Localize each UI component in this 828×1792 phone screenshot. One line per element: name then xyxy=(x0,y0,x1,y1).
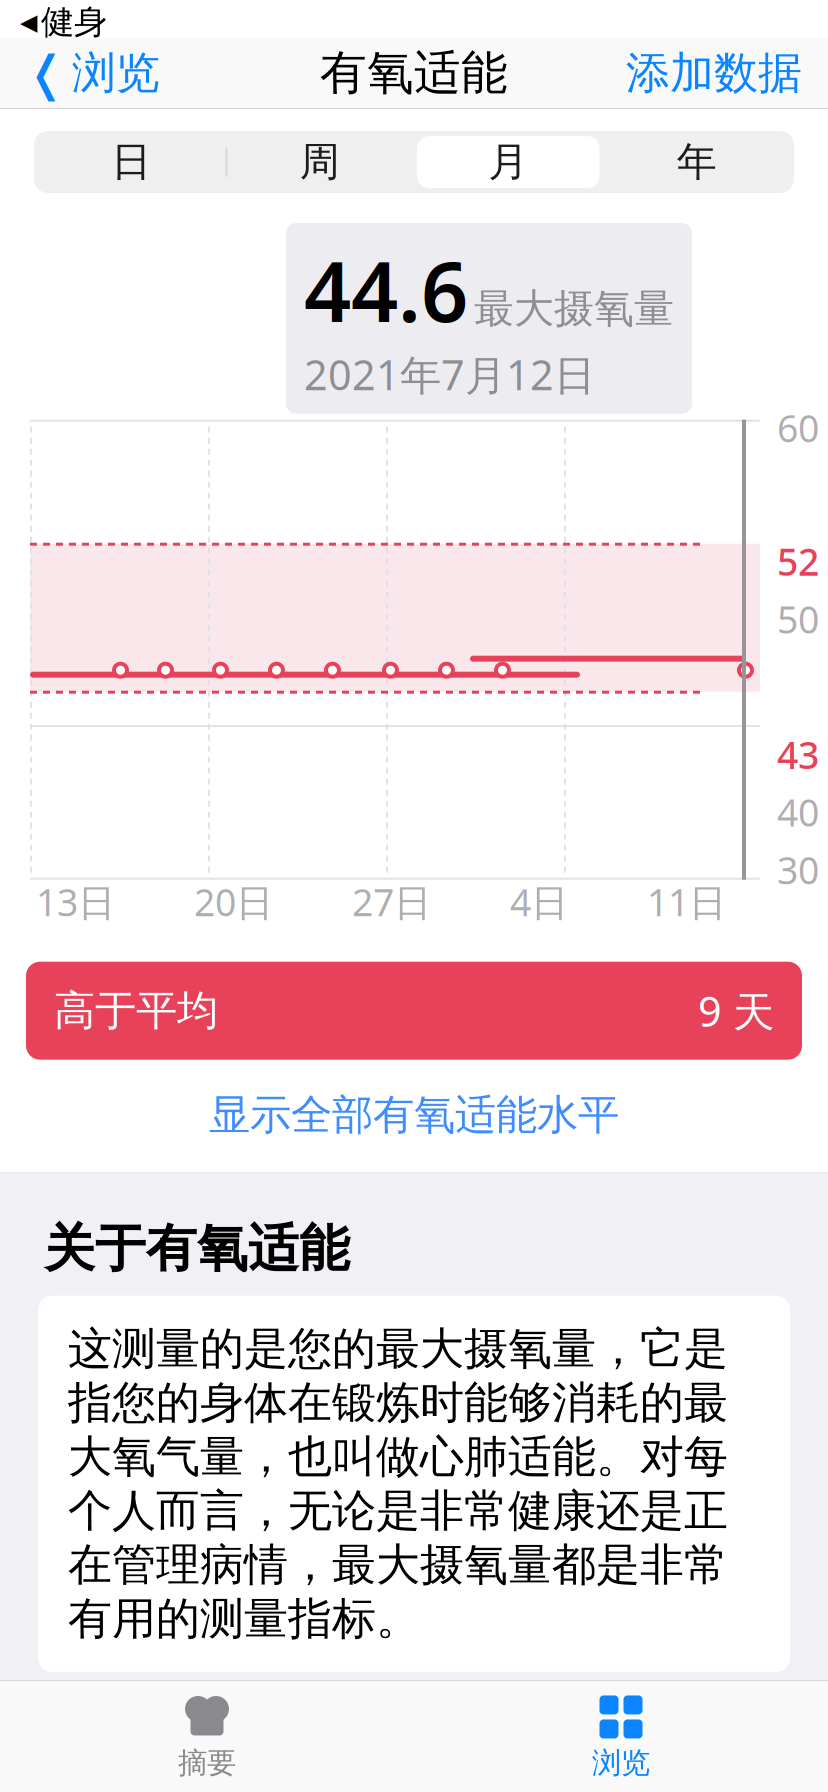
staticText: 显示全部有氧适能水平 xyxy=(209,1090,619,1140)
staticText: 2021年7月12日 xyxy=(304,347,595,402)
staticText: 13日 xyxy=(36,877,115,926)
staticText: 摘要 xyxy=(178,1745,236,1781)
button[interactable]: 年 xyxy=(602,133,791,191)
staticText: 周 xyxy=(300,137,340,187)
staticText: 这测量的是您的最大摄氧量，它是指您的身体在锻炼时能够消耗的最大氧气量，也叫做心肺… xyxy=(68,1322,728,1646)
staticText: 27日 xyxy=(352,877,431,926)
button[interactable]: 摘要 xyxy=(0,1681,414,1791)
staticText: ◀ xyxy=(20,9,37,35)
staticText: 最大摄氧量 xyxy=(474,284,674,333)
staticText: 43 xyxy=(777,730,819,779)
staticText: 4日 xyxy=(510,877,568,926)
staticText: 日 xyxy=(111,137,151,187)
staticText: 关于有氧适能 xyxy=(44,1217,350,1280)
staticText: 月 xyxy=(488,137,528,187)
button[interactable]: 高于平均 xyxy=(0,962,828,1060)
staticText: 9 天 xyxy=(698,983,774,1038)
staticText: 52 xyxy=(777,536,819,586)
staticText: 浏览 xyxy=(72,46,160,100)
button[interactable]: 显示全部有氧适能水平 xyxy=(189,1076,639,1154)
button[interactable]: 浏览 xyxy=(414,1681,828,1791)
staticText: 11日 xyxy=(647,877,726,926)
staticText: 有氧适能 xyxy=(320,44,508,102)
staticText: 44.6 xyxy=(304,235,468,345)
button[interactable]: 周 xyxy=(225,133,414,191)
staticText: 30 xyxy=(777,845,819,894)
staticText: 添加数据 xyxy=(626,46,802,100)
staticText: 20日 xyxy=(194,877,273,926)
staticText: ❬ xyxy=(26,46,66,100)
staticText: 50 xyxy=(777,594,819,644)
staticText: 健身 xyxy=(41,2,107,42)
button[interactable]: ❬ xyxy=(12,38,174,108)
button[interactable]: 月 xyxy=(414,133,602,191)
staticText: 高于平均 xyxy=(54,985,218,1036)
staticText: 年 xyxy=(677,137,717,187)
staticText: 浏览 xyxy=(592,1745,650,1781)
staticText: 40 xyxy=(777,787,819,837)
button[interactable]: 日 xyxy=(37,133,225,191)
staticText: 60 xyxy=(777,403,819,453)
button[interactable]: 添加数据 xyxy=(612,38,816,108)
